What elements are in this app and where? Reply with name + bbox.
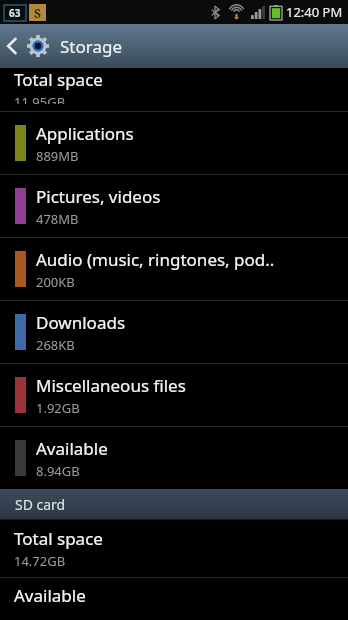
staticText: Audio (music, ringtones, pod.. <box>36 248 275 271</box>
button[interactable]: Total space <box>0 68 348 111</box>
staticText: 12:40 PM <box>286 3 343 21</box>
staticText: S <box>34 5 41 21</box>
staticText: 8.94GB <box>36 462 80 480</box>
staticText: 268KB <box>36 336 75 354</box>
staticText: 889MB <box>36 147 79 165</box>
button[interactable]: Audio (music, ringtones, pod.. <box>0 238 348 300</box>
staticText: 478MB <box>36 210 79 228</box>
staticText: 63 <box>9 6 21 20</box>
staticText: Available <box>14 584 86 607</box>
staticText: Available <box>36 437 108 460</box>
staticText: Total space <box>14 68 103 91</box>
staticText: Downloads <box>36 311 126 334</box>
staticText: Pictures, videos <box>36 185 161 208</box>
button[interactable]: Miscellaneous files <box>0 364 348 426</box>
button[interactable]: Total space <box>0 520 348 577</box>
staticText: Storage <box>60 35 123 58</box>
button[interactable]: Pictures, videos <box>0 175 348 237</box>
button[interactable]: Available <box>0 427 348 489</box>
button[interactable]: Downloads <box>0 301 348 363</box>
button[interactable]: Applications <box>0 112 348 174</box>
staticText: 200KB <box>36 273 75 291</box>
staticText: SD card <box>15 495 66 514</box>
staticText: Miscellaneous files <box>36 374 186 397</box>
staticText: 14.72GB <box>14 552 66 570</box>
button[interactable]: Available <box>0 578 348 608</box>
staticText: 11.95GB <box>14 93 66 104</box>
button[interactable]: Navigate up <box>0 30 129 62</box>
staticText: Applications <box>36 122 134 145</box>
staticText: Total space <box>14 527 103 550</box>
staticText: 1.92GB <box>36 399 80 417</box>
